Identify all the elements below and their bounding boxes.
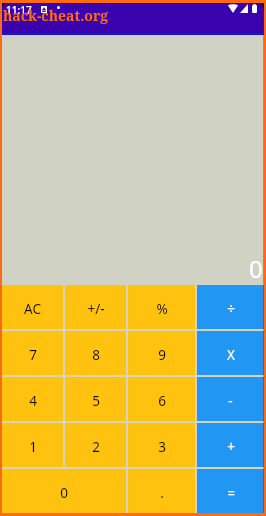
staticText: 5 — [92, 392, 100, 410]
staticText: . — [160, 484, 164, 502]
staticText: 2 — [92, 438, 100, 456]
other: Status dot — [57, 6, 60, 9]
staticText: 9 — [158, 346, 166, 364]
button[interactable]: 5 — [65, 377, 126, 421]
button[interactable]: 0 — [2, 469, 126, 513]
button[interactable]: 3 — [128, 423, 195, 467]
other: Wi-Fi — [228, 4, 238, 13]
staticText: X — [227, 346, 235, 364]
button[interactable]: 1 — [2, 423, 63, 467]
staticText: AC — [24, 300, 41, 318]
button[interactable]: X — [197, 331, 264, 375]
other: Battery — [252, 4, 257, 13]
button[interactable]: - — [197, 377, 264, 421]
button[interactable]: 9 — [128, 331, 195, 375]
button[interactable]: AC — [2, 285, 63, 329]
other: Signal — [240, 4, 248, 13]
button[interactable]: +/- — [65, 285, 126, 329]
staticText: 4 — [29, 392, 37, 410]
staticText: 8 — [92, 346, 100, 364]
button[interactable]: 7 — [2, 331, 63, 375]
button[interactable]: % — [128, 285, 195, 329]
staticText: 7 — [29, 346, 37, 364]
staticText: 11:17 — [6, 3, 32, 17]
staticText: ÷ — [227, 300, 235, 318]
staticText: 6 — [158, 392, 166, 410]
staticText: 0 — [60, 484, 68, 502]
staticText: = — [227, 484, 235, 502]
staticText: hack-cheat.org — [3, 6, 109, 25]
button[interactable]: ÷ — [197, 285, 264, 329]
button[interactable]: 8 — [65, 331, 126, 375]
staticText: 0 — [249, 252, 263, 285]
staticText: - — [228, 392, 233, 410]
button[interactable]: = — [197, 469, 264, 513]
button[interactable]: . — [128, 469, 195, 513]
other: Notification — [41, 6, 47, 13]
button[interactable]: 2 — [65, 423, 126, 467]
staticText: % — [156, 300, 168, 318]
staticText: 3 — [158, 438, 166, 456]
staticText: + — [227, 438, 235, 456]
button[interactable]: + — [197, 423, 264, 467]
button[interactable]: 4 — [2, 377, 63, 421]
button[interactable]: 6 — [128, 377, 195, 421]
staticText: +/- — [87, 300, 105, 318]
staticText: 1 — [29, 438, 37, 456]
